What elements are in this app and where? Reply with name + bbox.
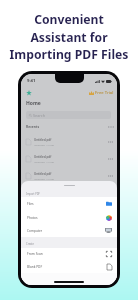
button[interactable]: Item menu: [107, 156, 114, 161]
staticText: Search: [33, 113, 46, 118]
button[interactable]: Starred: [25, 89, 32, 96]
staticText: Blank PDF: [27, 265, 43, 269]
button[interactable]: Files: [21, 197, 117, 211]
button[interactable]: Photos: [21, 211, 117, 224]
staticText: Recents: [26, 124, 40, 129]
staticText: Untitled.pdf: [34, 172, 52, 176]
button[interactable]: Free Trial: [89, 89, 114, 96]
staticText: Photos: [27, 216, 38, 220]
staticText: Import PDF: [26, 192, 40, 196]
button[interactable]: Untitled.pdf: [21, 150, 117, 167]
staticText: Files: [27, 202, 34, 206]
staticText: Untitled.pdf: [34, 138, 52, 142]
button[interactable]: Blank PDF: [21, 260, 117, 273]
staticText: Create: [26, 242, 34, 246]
button[interactable]: Search: [26, 111, 111, 119]
button[interactable]: Item menu: [107, 139, 114, 144]
staticText: From Scan: [27, 252, 43, 256]
button[interactable]: Computer: [21, 224, 117, 237]
button[interactable]: Item menu: [107, 173, 114, 178]
staticText: Free Trial: [95, 90, 114, 96]
staticText: 9:41: [27, 78, 36, 84]
staticText: Convenient Assistant for Importing PDF F…: [0, 11, 138, 62]
staticText: Yesterday 1.2 MB: [34, 160, 54, 163]
staticText: Computer: [27, 229, 43, 233]
staticText: Yesterday 1.2 MB: [34, 177, 54, 180]
staticText: Yesterday 1.2 MB: [34, 143, 54, 146]
button[interactable]: Untitled.pdf: [21, 133, 117, 150]
staticText: Home: [26, 100, 41, 107]
staticText: Untitled.pdf: [34, 155, 52, 159]
button[interactable]: More options: [107, 124, 114, 129]
button[interactable]: From Scan: [21, 248, 117, 260]
button[interactable]: Untitled.pdf: [21, 167, 117, 184]
